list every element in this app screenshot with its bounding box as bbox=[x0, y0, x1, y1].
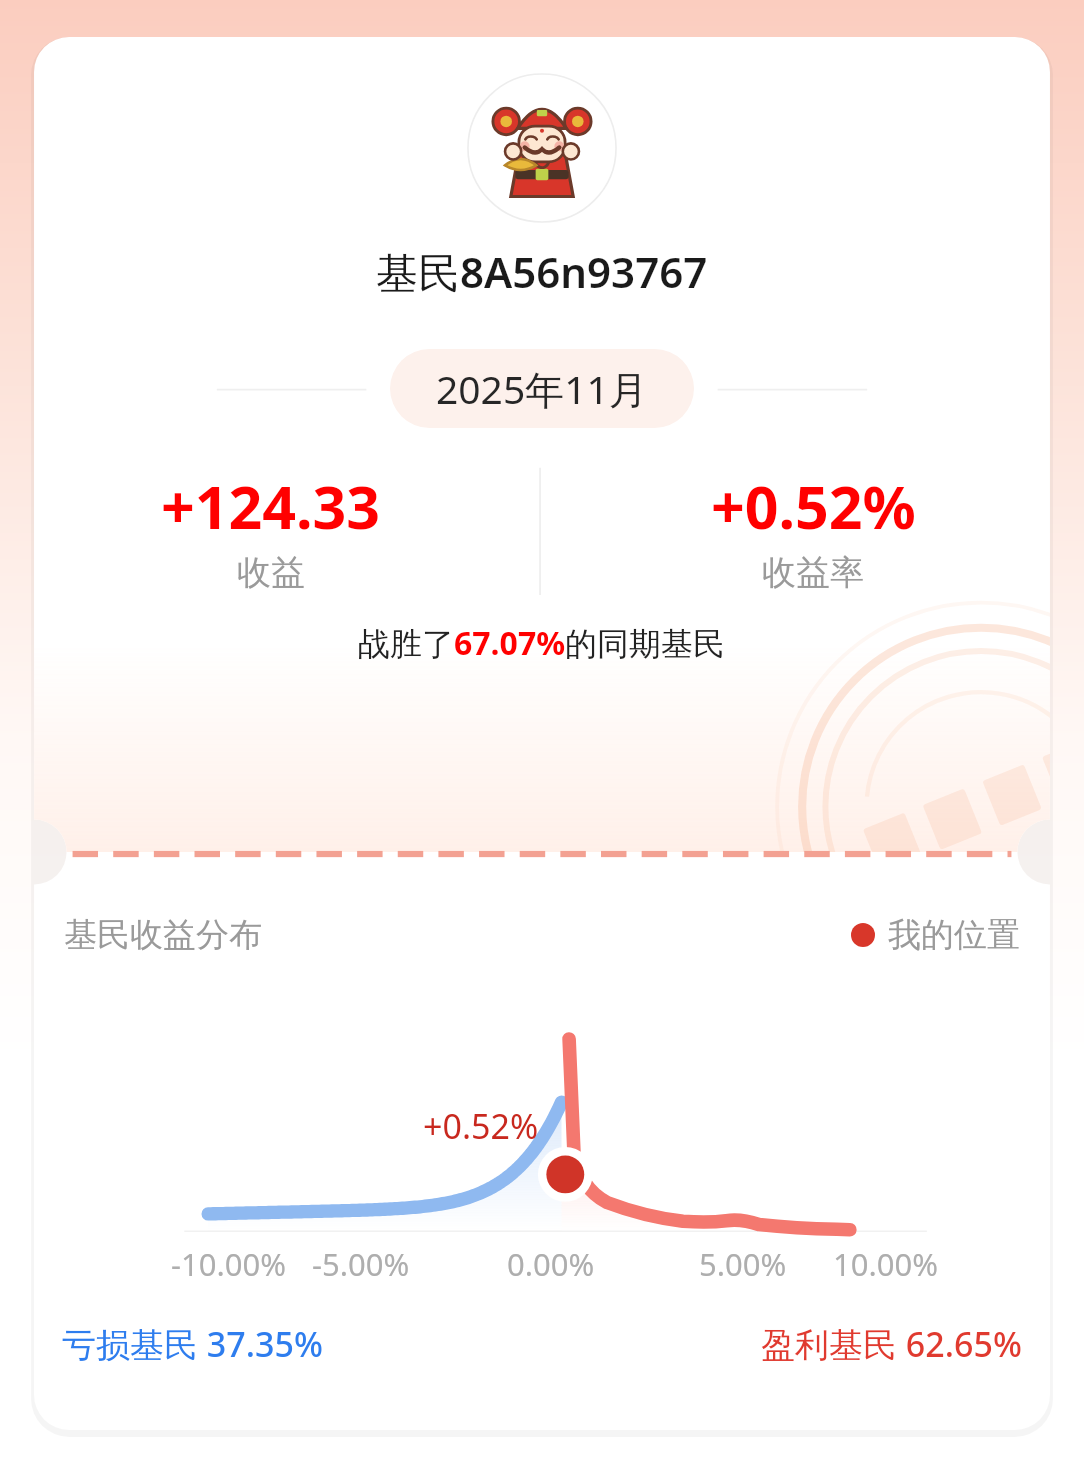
staticText: +124.33 bbox=[161, 466, 381, 546]
staticText: 10.00% bbox=[833, 1243, 938, 1285]
staticText: 2025年11月 bbox=[436, 362, 648, 415]
button[interactable]: 2025年11月 bbox=[390, 349, 694, 428]
button[interactable]: My position marker bbox=[848, 914, 1020, 956]
staticText: 收益 bbox=[237, 551, 305, 594]
button[interactable]: +0.52% bbox=[542, 466, 1084, 594]
button[interactable]: 基民8A56n93767 bbox=[0, 243, 1084, 300]
staticText: -5.00% bbox=[312, 1243, 410, 1285]
staticText: 基民8A56n93767 bbox=[376, 243, 708, 300]
staticText: 我的位置 bbox=[888, 914, 1020, 956]
staticText: 5.00% bbox=[699, 1243, 787, 1285]
staticText: 收益率 bbox=[762, 551, 864, 594]
staticText: 战胜了67.07%的同期基民 bbox=[358, 621, 726, 665]
staticText: 盈利基民 62.65% bbox=[761, 1321, 1022, 1367]
button[interactable]: +124.33 bbox=[0, 466, 542, 594]
staticText: +0.52% bbox=[423, 1103, 539, 1149]
staticText: +0.52% bbox=[711, 466, 916, 546]
staticText: 亏损基民 37.35% bbox=[62, 1321, 323, 1367]
staticText: 0.00% bbox=[507, 1243, 595, 1285]
other: My position marker bbox=[848, 920, 878, 950]
staticText: 基民收益分布 bbox=[64, 914, 262, 956]
staticText: -10.00% bbox=[171, 1243, 286, 1285]
